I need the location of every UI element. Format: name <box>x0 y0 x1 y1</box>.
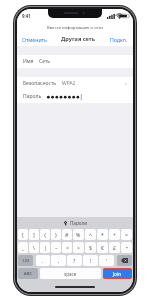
staticText: Ввести информацию о сети <box>47 25 103 31</box>
staticText: Join <box>113 271 122 277</box>
staticText: ^ <box>89 231 92 238</box>
staticText: \ <box>33 244 35 251</box>
button[interactable]: Имя <box>17 55 133 68</box>
staticText: • <box>126 244 128 251</box>
staticText: . <box>42 257 44 264</box>
button[interactable]: Подкл. <box>109 34 129 45</box>
staticText: { <box>44 231 46 238</box>
staticText: WPA2 <box>62 80 76 87</box>
staticText: = <box>125 231 128 238</box>
staticText: Сеть <box>39 58 50 65</box>
staticText: * <box>101 231 104 238</box>
button[interactable]: > <box>73 242 84 253</box>
button[interactable]: _ <box>18 242 28 253</box>
staticText: % <box>76 231 81 238</box>
staticText: ? <box>73 257 76 264</box>
button[interactable]: ~ <box>51 242 61 253</box>
button[interactable]: € <box>97 242 108 253</box>
button[interactable]: ] <box>29 229 39 240</box>
button[interactable]: % <box>73 229 84 240</box>
button[interactable]: space <box>40 268 101 279</box>
button[interactable]: ! <box>83 255 98 266</box>
staticText: ~ <box>55 244 58 251</box>
staticText: Пароль <box>23 93 42 100</box>
button[interactable]: 123 <box>18 255 33 266</box>
button[interactable]: Пароль <box>17 90 133 103</box>
staticText: + <box>113 231 116 238</box>
staticText: | <box>44 244 47 251</box>
staticText: Безопасность <box>23 80 57 87</box>
staticText: ABC <box>24 271 33 277</box>
staticText: , <box>58 257 60 264</box>
staticText: £ <box>113 244 116 251</box>
button[interactable]: + <box>109 229 120 240</box>
staticText: [ <box>22 231 24 238</box>
button[interactable]: Join <box>104 269 131 278</box>
staticText: } <box>55 231 57 238</box>
staticText: ] <box>33 231 35 238</box>
button[interactable]: Отменить <box>21 34 48 45</box>
staticText: 123 <box>22 258 30 264</box>
button[interactable]: £ <box>109 242 120 253</box>
button[interactable]: • <box>121 242 132 253</box>
staticText: space <box>64 271 77 277</box>
button[interactable]: Пароли <box>60 219 90 227</box>
staticText: Пароли <box>70 220 87 226</box>
button[interactable]: $ <box>85 242 96 253</box>
staticText: € <box>101 244 104 251</box>
button[interactable]: * <box>97 229 108 240</box>
staticText: Подкл. <box>110 36 128 43</box>
staticText: ! <box>90 257 92 264</box>
staticText: _ <box>22 244 25 251</box>
button[interactable]: { <box>40 229 50 240</box>
staticText: < <box>66 244 69 251</box>
button[interactable]: ' <box>99 255 114 266</box>
button[interactable]: \ <box>29 242 39 253</box>
staticText: ' <box>106 257 108 264</box>
button[interactable]: ^ <box>85 229 96 240</box>
button[interactable]: < <box>62 242 72 253</box>
button[interactable]: . <box>36 255 50 266</box>
button[interactable]: , <box>51 255 66 266</box>
button[interactable]: ? <box>67 255 82 266</box>
button[interactable]: | <box>40 242 50 253</box>
button[interactable]: = <box>121 229 132 240</box>
staticText: Имя <box>23 58 34 65</box>
button[interactable]: # <box>62 229 72 240</box>
button[interactable]: Безопасность <box>17 77 133 90</box>
staticText: $ <box>89 244 92 251</box>
staticText: 9:41 <box>22 13 31 19</box>
staticText: Другая сеть <box>61 35 95 43</box>
button[interactable]: ABC <box>18 268 38 279</box>
staticText: # <box>65 231 69 238</box>
button[interactable]: [ <box>18 229 28 240</box>
button[interactable]: } <box>51 229 61 240</box>
button[interactable]: Delete <box>117 255 132 266</box>
staticText: > <box>77 244 80 251</box>
staticText: Отменить <box>22 36 47 43</box>
